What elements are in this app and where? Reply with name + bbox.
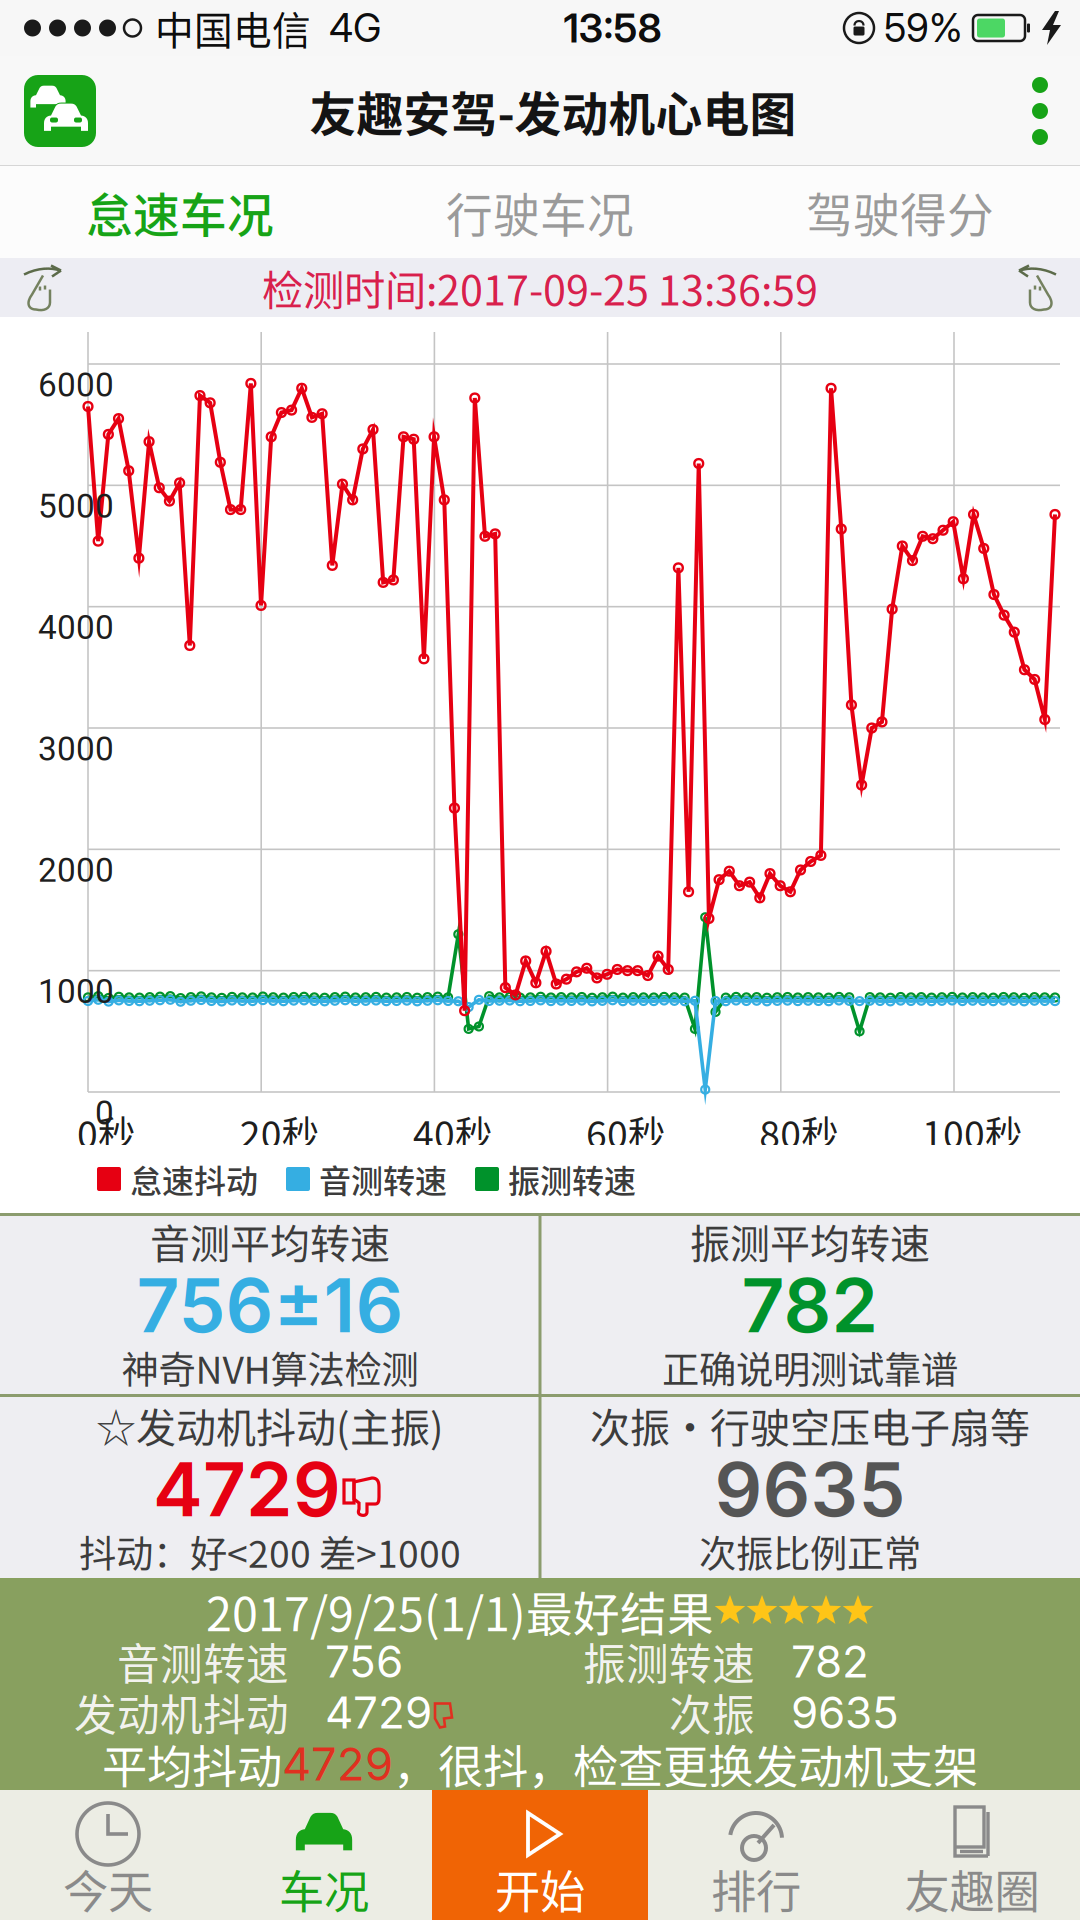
staticText: 80秒: [759, 1105, 838, 1159]
staticText: 怠速抖动: [130, 1156, 258, 1202]
button[interactable]: 排行: [648, 1790, 864, 1920]
staticText: 发动机抖动: [74, 1682, 289, 1743]
staticText: 中国电信: [155, 0, 311, 56]
staticText: 振测转速: [508, 1156, 636, 1202]
staticText: 9635: [714, 1444, 905, 1534]
staticText: 6000: [38, 365, 114, 405]
staticText: 2017/9/25(1/1)最好结果: [206, 1577, 714, 1645]
button[interactable]: 友趣圈: [864, 1790, 1080, 1920]
staticText: 13:58: [563, 4, 661, 52]
staticText: 100秒: [922, 1105, 1022, 1159]
button[interactable]: 行驶车况: [360, 166, 720, 258]
staticText: 次振比例正常: [699, 1524, 921, 1579]
staticText: 4729: [153, 1444, 341, 1534]
staticText: 4G: [329, 5, 381, 51]
staticText: 0: [95, 1093, 114, 1133]
staticText: 行驶车况: [446, 178, 634, 246]
staticText: 60秒: [586, 1105, 665, 1159]
staticText: 次振: [669, 1682, 755, 1743]
staticText: 音测转速: [117, 1631, 289, 1692]
staticText: 开始: [495, 1856, 585, 1920]
staticText: 40秒: [413, 1105, 492, 1159]
staticText: 振测平均转速: [690, 1212, 930, 1270]
button[interactable]: 怠速车况: [0, 166, 360, 258]
staticText: 0秒: [77, 1105, 135, 1159]
staticText: ☆发动机抖动(主振): [96, 1396, 444, 1454]
staticText: 神奇NVH算法检测: [121, 1340, 418, 1395]
staticText: ，很抖，检查更换发动机支架: [393, 1731, 978, 1797]
staticText: 友趣安驾-发动机心电图: [309, 77, 796, 145]
staticText: 756±16: [136, 1260, 403, 1350]
staticText: 756: [325, 1635, 403, 1688]
button[interactable]: 车辆: [0, 75, 106, 147]
staticText: 车况: [279, 1856, 369, 1920]
staticText: 今天: [63, 1856, 153, 1920]
staticText: 友趣圈: [904, 1856, 1039, 1920]
staticText: 抖动：好<200 差>1000: [79, 1524, 461, 1579]
staticText: 平均抖动: [102, 1731, 282, 1797]
staticText: 5000: [38, 487, 114, 526]
staticText: 排行: [711, 1856, 801, 1920]
staticText: 2000: [38, 851, 114, 890]
staticText: 4000: [38, 608, 114, 647]
staticText: 782: [741, 1260, 878, 1350]
button[interactable]: 车况: [216, 1790, 432, 1920]
staticText: 59%: [884, 5, 963, 51]
button[interactable]: 驾驶得分: [720, 166, 1080, 258]
staticText: 1000: [38, 972, 114, 1011]
staticText: 3000: [38, 729, 114, 769]
staticText: 782: [791, 1635, 869, 1688]
staticText: 4729: [282, 1737, 393, 1791]
button[interactable]: 开始: [432, 1790, 648, 1920]
staticText: 音测平均转速: [150, 1212, 390, 1270]
staticText: 驾驶得分: [806, 178, 994, 246]
button[interactable]: 更多: [1000, 63, 1080, 159]
button[interactable]: 今天: [0, 1790, 216, 1920]
staticText: 音测转速: [319, 1156, 447, 1202]
staticText: 振测转速: [583, 1631, 755, 1692]
staticText: 4729: [325, 1686, 432, 1739]
staticText: 正确说明测试靠谱: [662, 1340, 958, 1395]
staticText: 次振·行驶空压电子扇等: [590, 1396, 1030, 1454]
staticText: 检测时间:2017-09-25 13:36:59: [262, 258, 818, 317]
staticText: 20秒: [240, 1105, 319, 1159]
staticText: 9635: [791, 1686, 899, 1739]
staticText: 怠速车况: [86, 178, 274, 246]
